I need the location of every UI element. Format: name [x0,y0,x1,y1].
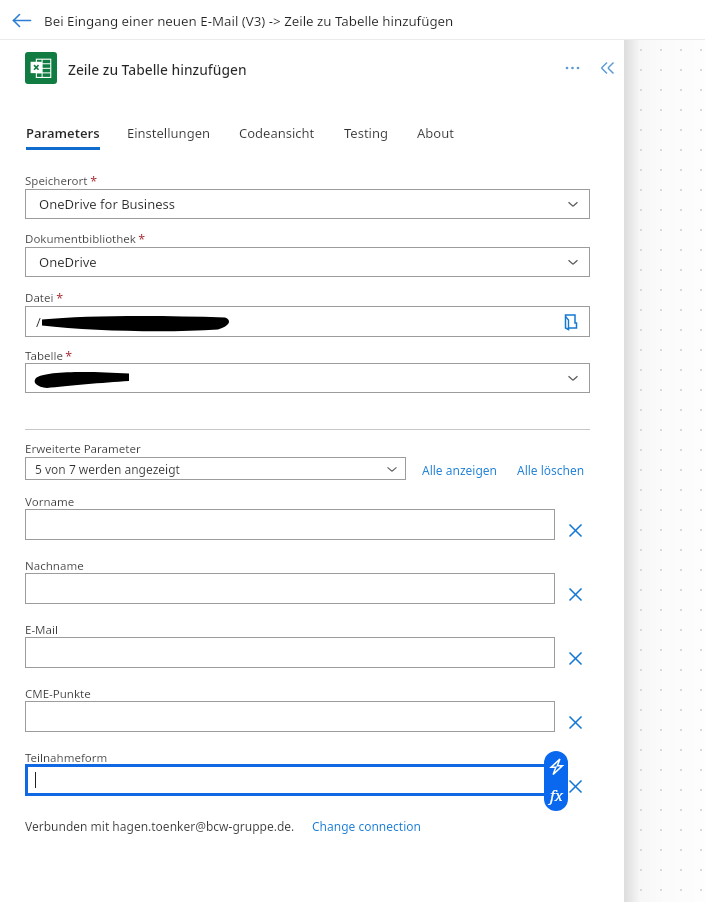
staticText: Datei [25,290,54,306]
staticText: Zeile zu Tabelle hinzufügen [68,60,247,79]
staticText: About [417,124,454,142]
staticText: Change connection [312,818,421,834]
button[interactable]: Einstellungen [117,116,221,151]
staticText: Bei Eingang einer neuen E-Mail (V3) -> Z… [44,12,454,30]
staticText: Vorname [25,494,75,510]
staticText: Teilnahmeform [25,750,108,766]
button[interactable]: Alle anzeigen [422,462,497,478]
button[interactable]: Parameters [18,116,108,151]
button[interactable]: Alle löschen [517,462,585,478]
button[interactable]: Change connection [312,818,421,834]
button[interactable]: Remove Vorname [562,517,588,543]
staticText: / [36,313,41,331]
button[interactable]: OneDrive [25,247,590,277]
button[interactable] [25,701,555,732]
staticText: Einstellungen [127,124,211,142]
button[interactable] [25,509,555,540]
button[interactable]: OneDrive for Business [25,189,590,219]
button[interactable]: Back [11,10,31,30]
button[interactable]: 5 von 7 werden angezeigt [25,457,406,480]
staticText: Tabelle [25,348,63,364]
button[interactable]: Testing [335,116,397,151]
button[interactable] [25,637,555,668]
button[interactable]: About [408,116,463,151]
staticText: * [53,290,64,307]
staticText: * [62,348,73,365]
button[interactable]: Dynamic content [544,751,568,781]
staticText: Dokumentbibliothek [25,231,136,247]
staticText: * [87,173,98,190]
button[interactable]: Remove CME-Punkte [562,709,588,735]
button[interactable]: Remove Teilnahmeform [562,773,588,799]
staticText: fx [550,785,563,805]
button[interactable]: Codeansicht [230,116,324,151]
button[interactable] [25,764,555,796]
staticText: CME-Punkte [25,686,91,702]
staticText: 5 von 7 werden angezeigt [35,461,180,477]
button[interactable]: / [25,306,590,337]
button[interactable]: Collapse panel [592,53,622,83]
button[interactable] [25,573,555,604]
button[interactable]: More options [558,53,588,83]
staticText: Alle löschen [517,462,585,478]
staticText: E-Mail [25,622,58,638]
button[interactable]: Remove Nachname [562,581,588,607]
staticText: Nachname [25,558,84,574]
staticText: OneDrive [39,253,97,271]
staticText: Codeansicht [239,124,315,142]
staticText: Speicherort [25,173,88,189]
staticText: * [135,231,146,248]
button[interactable]: Expression editor [544,781,568,811]
staticText: Parameters [26,124,100,142]
staticText: OneDrive for Business [39,195,176,213]
staticText: Testing [344,124,388,142]
staticText: Erweiterte Parameter [25,441,141,457]
button[interactable]: Remove E-Mail [562,645,588,671]
button[interactable] [25,363,590,393]
staticText: Verbunden mit hagen.toenker@bcw-gruppe.d… [25,818,295,834]
staticText: Alle anzeigen [422,462,497,478]
